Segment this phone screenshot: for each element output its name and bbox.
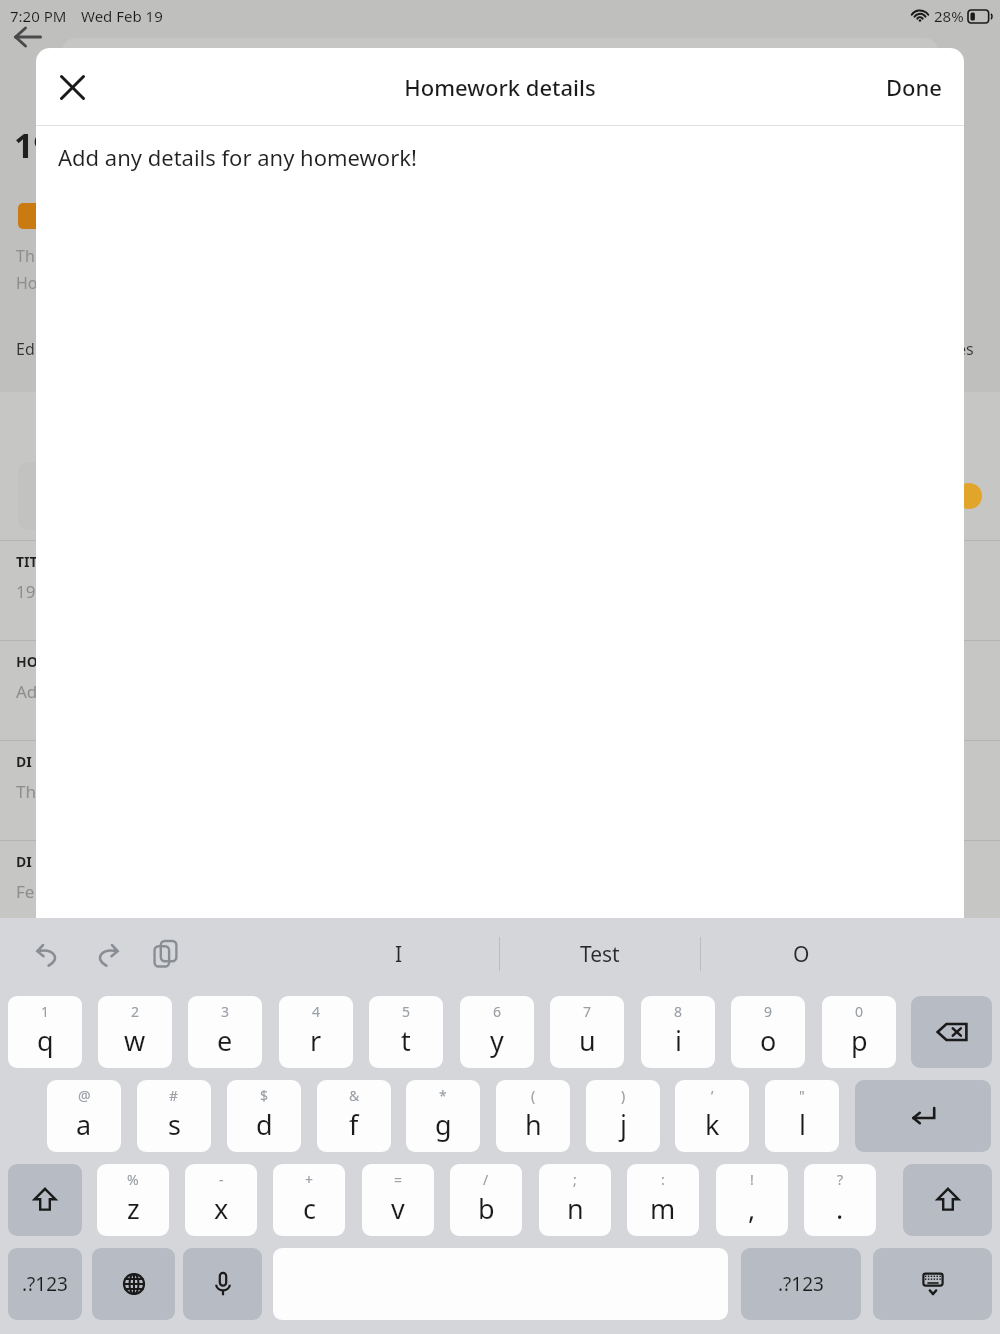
staticText: r bbox=[310, 1022, 322, 1059]
button[interactable]: & bbox=[317, 1080, 391, 1152]
staticText: l bbox=[799, 1106, 806, 1143]
button[interactable]: Shift bbox=[8, 1164, 82, 1236]
staticText: DI bbox=[16, 852, 32, 871]
staticText: 1 bbox=[41, 1002, 50, 1021]
button[interactable]: Shift bbox=[903, 1164, 992, 1236]
button[interactable]: Return bbox=[855, 1080, 991, 1152]
staticText: * bbox=[439, 1086, 447, 1105]
button[interactable]: Test bbox=[500, 930, 700, 978]
button[interactable]: - bbox=[185, 1164, 257, 1236]
staticText: ? bbox=[837, 1170, 844, 1189]
staticText: # bbox=[169, 1086, 179, 1105]
button[interactable]: Voice input bbox=[183, 1248, 262, 1320]
staticText: 2 bbox=[131, 1002, 140, 1021]
button[interactable]: $ bbox=[227, 1080, 301, 1152]
staticText: / bbox=[483, 1170, 489, 1189]
button[interactable]: 2 bbox=[98, 996, 172, 1068]
staticText: + bbox=[305, 1170, 314, 1189]
button[interactable]: I bbox=[299, 930, 499, 978]
button[interactable]: .?123 bbox=[8, 1248, 82, 1320]
staticText: t bbox=[401, 1022, 411, 1059]
button[interactable]: 8 bbox=[641, 996, 715, 1068]
staticText: 3 bbox=[221, 1002, 230, 1021]
staticText: f bbox=[349, 1106, 359, 1143]
staticText: j bbox=[620, 1106, 627, 1143]
staticText: TITLE bbox=[16, 552, 54, 571]
staticText: m bbox=[650, 1190, 676, 1227]
staticText: Add any details for any homework! bbox=[58, 142, 417, 172]
button[interactable]: 3 bbox=[188, 996, 262, 1068]
staticText: ; bbox=[573, 1170, 577, 1189]
staticText: o bbox=[760, 1022, 777, 1059]
button[interactable]: O bbox=[701, 930, 901, 978]
button[interactable]: / bbox=[450, 1164, 522, 1236]
button[interactable]: 4 bbox=[279, 996, 353, 1068]
staticText: Done bbox=[886, 72, 942, 102]
staticText: 7 bbox=[583, 1002, 592, 1021]
staticText: . bbox=[836, 1190, 844, 1227]
staticText: u bbox=[579, 1022, 596, 1059]
button[interactable]: * bbox=[406, 1080, 480, 1152]
button[interactable]: ( bbox=[496, 1080, 570, 1152]
button[interactable]: .?123 bbox=[741, 1248, 861, 1320]
button[interactable]: # bbox=[137, 1080, 211, 1152]
staticText: a bbox=[76, 1106, 92, 1143]
button[interactable]: Done bbox=[864, 60, 964, 114]
button[interactable]: Change language bbox=[92, 1248, 175, 1320]
staticText: ( bbox=[531, 1086, 536, 1105]
staticText: g bbox=[435, 1106, 452, 1143]
staticText: k bbox=[705, 1106, 720, 1143]
staticText: b bbox=[478, 1190, 495, 1227]
staticText: d bbox=[256, 1106, 273, 1143]
button[interactable]: : bbox=[627, 1164, 699, 1236]
staticText: 8 bbox=[674, 1002, 683, 1021]
staticText: Th bbox=[16, 245, 35, 267]
button[interactable]: 7 bbox=[550, 996, 624, 1068]
button[interactable]: ? bbox=[804, 1164, 876, 1236]
staticText: n bbox=[567, 1190, 584, 1227]
button[interactable]: ; bbox=[539, 1164, 611, 1236]
button[interactable]: Backspace bbox=[911, 996, 992, 1068]
staticText: 7:20 PM bbox=[10, 6, 67, 26]
staticText: DI bbox=[16, 752, 32, 771]
button[interactable]: " bbox=[765, 1080, 839, 1152]
staticText: x bbox=[214, 1190, 229, 1227]
button[interactable]: 0 bbox=[822, 996, 896, 1068]
button[interactable]: 6 bbox=[460, 996, 534, 1068]
staticText: 4 bbox=[312, 1002, 321, 1021]
button[interactable]: Redo bbox=[85, 932, 129, 976]
button[interactable]: + bbox=[273, 1164, 345, 1236]
button[interactable]: Undo bbox=[26, 932, 70, 976]
button[interactable]: ! bbox=[716, 1164, 788, 1236]
staticText: 9 bbox=[764, 1002, 773, 1021]
staticText: Th bbox=[16, 780, 36, 803]
button[interactable]: % bbox=[97, 1164, 169, 1236]
button[interactable]: @ bbox=[47, 1080, 121, 1152]
button[interactable]: 1 bbox=[8, 996, 82, 1068]
staticText: Ad bbox=[16, 680, 38, 703]
button[interactable]: = bbox=[362, 1164, 434, 1236]
staticText: % bbox=[127, 1170, 139, 1189]
staticText: HO bbox=[16, 652, 38, 671]
staticText: Wed Feb 19 bbox=[81, 6, 163, 26]
button[interactable]: Close bbox=[48, 63, 96, 111]
staticText: Ho bbox=[16, 272, 38, 294]
staticText: & bbox=[349, 1086, 360, 1105]
staticText: 19 bbox=[16, 580, 36, 603]
staticText: : bbox=[661, 1170, 665, 1189]
staticText: , bbox=[748, 1190, 756, 1227]
button[interactable]: Paste bbox=[144, 932, 188, 976]
staticText: v bbox=[391, 1190, 405, 1227]
staticText: s bbox=[168, 1106, 181, 1143]
staticText: Fe bbox=[16, 880, 35, 903]
staticText: ’ bbox=[711, 1086, 714, 1105]
staticText: " bbox=[799, 1086, 805, 1105]
button[interactable]: 9 bbox=[731, 996, 805, 1068]
button[interactable]: Hide keyboard bbox=[873, 1248, 992, 1320]
staticText: Test bbox=[580, 940, 620, 969]
button[interactable]: 5 bbox=[369, 996, 443, 1068]
button[interactable]: ) bbox=[586, 1080, 660, 1152]
button[interactable]: ’ bbox=[675, 1080, 749, 1152]
staticText: 0 bbox=[855, 1002, 864, 1021]
